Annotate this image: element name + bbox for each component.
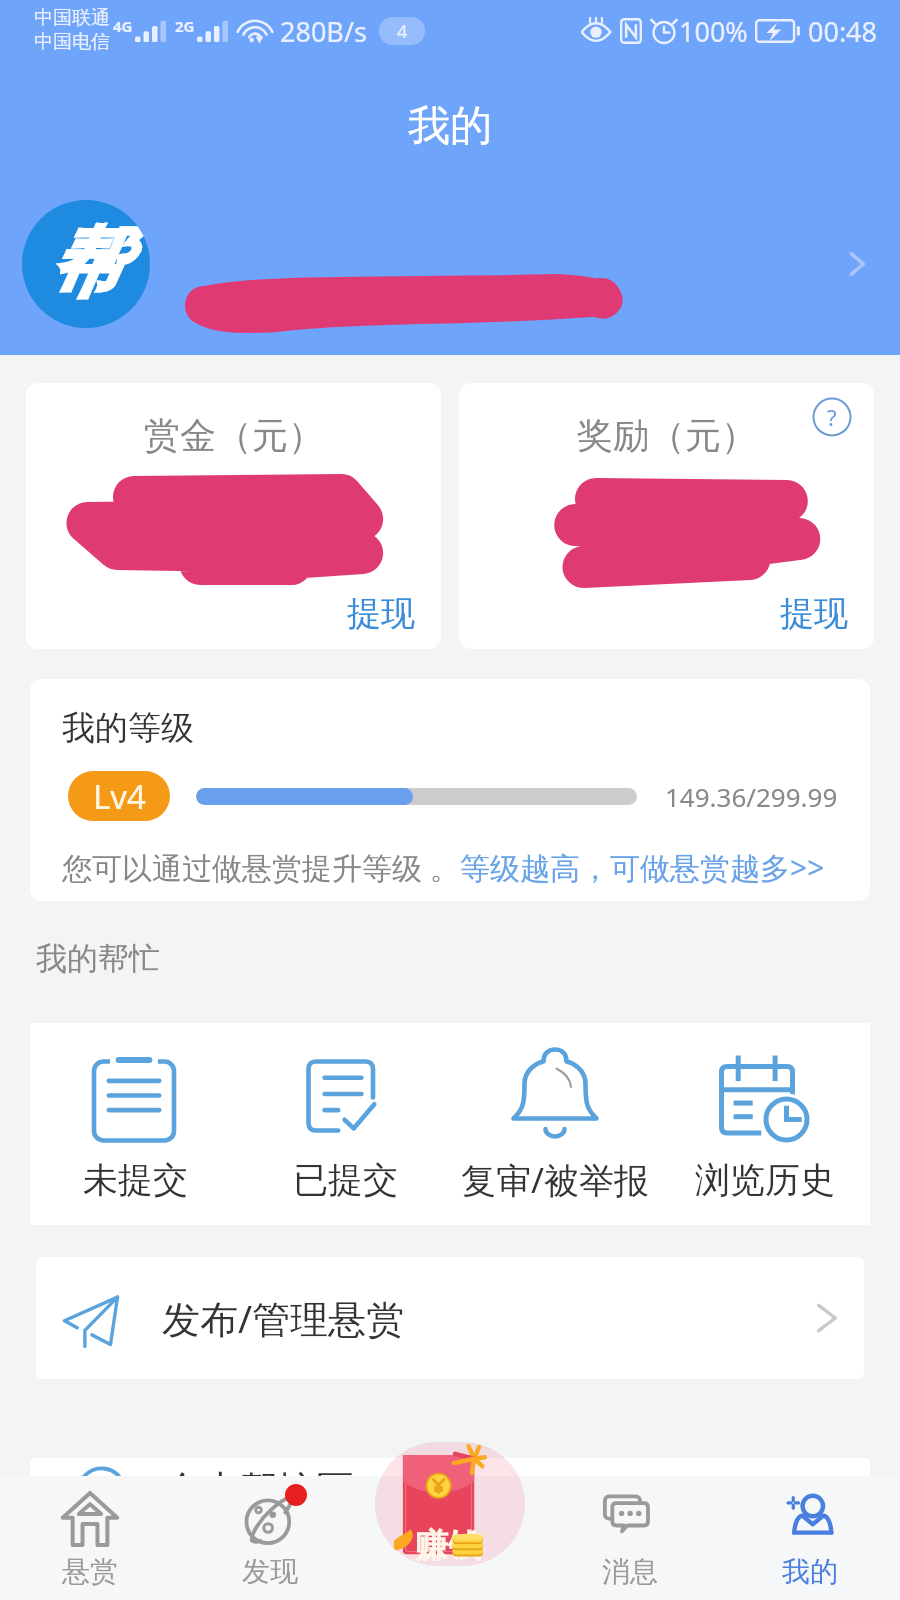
button[interactable]: 消息 <box>540 1476 720 1600</box>
staticText: 280B/s <box>280 13 367 50</box>
button[interactable]: 赚钱 <box>375 1442 525 1566</box>
staticText: 赚钱 <box>415 1525 481 1566</box>
staticText: 发现 <box>242 1554 298 1589</box>
staticText: 未提交 <box>83 1158 188 1202</box>
staticText: ? <box>827 402 837 432</box>
staticText: 149.36/299.99 <box>665 779 838 814</box>
staticText: 全土帮忙区 <box>164 1466 354 1514</box>
button[interactable]: 未提交 <box>30 1023 240 1225</box>
staticText: 浏览历史 <box>695 1158 835 1202</box>
staticText: 帮 <box>48 216 124 312</box>
staticText: 中国联通 <box>34 6 110 30</box>
staticText: 2G <box>175 16 195 36</box>
button[interactable]: 全土帮忙区 <box>30 1458 870 1580</box>
button[interactable]: 提现 <box>780 592 848 635</box>
button[interactable]: 帮助 <box>808 393 856 441</box>
button[interactable]: 悬赏 <box>0 1476 180 1600</box>
staticText: 4 <box>397 19 408 44</box>
staticText: 赏金（元） <box>144 413 324 458</box>
staticText: 我的帮忙 <box>36 939 160 978</box>
button[interactable]: 我的 <box>720 1476 900 1600</box>
button[interactable]: 奖励（元） <box>459 383 874 649</box>
staticText: 您可以通过做悬赏提升等级 。 <box>62 847 460 888</box>
staticText: 悬赏 <box>62 1554 118 1589</box>
button[interactable]: 我的等级 <box>30 679 870 901</box>
staticText: 我的等级 <box>62 707 194 749</box>
button[interactable]: 赏金（元） <box>26 383 441 649</box>
staticText: 消息 <box>602 1554 658 1589</box>
button[interactable]: 发布/管理悬赏 <box>36 1257 864 1379</box>
staticText: 我的 <box>408 100 492 153</box>
button[interactable]: 已提交 <box>240 1023 450 1225</box>
staticText: 发布/管理悬赏 <box>162 1292 405 1344</box>
staticText: 中国电信 <box>34 30 110 54</box>
staticText: 100% <box>679 13 748 50</box>
button[interactable]: 浏览历史 <box>660 1023 870 1225</box>
staticText: 奖励（元） <box>577 413 757 458</box>
button[interactable]: 等级越高，可做悬赏越多>> <box>460 847 825 888</box>
staticText: 00:48 <box>808 13 878 50</box>
button[interactable]: 复审/被举报 <box>450 1023 660 1225</box>
staticText: 已提交 <box>293 1158 398 1202</box>
button[interactable]: 发现 <box>180 1476 360 1600</box>
staticText: 复审/被举报 <box>461 1156 650 1204</box>
staticText: 4G <box>113 16 133 36</box>
staticText: Lv4 <box>93 774 146 819</box>
button[interactable]: 提现 <box>347 592 415 635</box>
staticText: 我的 <box>782 1554 838 1589</box>
